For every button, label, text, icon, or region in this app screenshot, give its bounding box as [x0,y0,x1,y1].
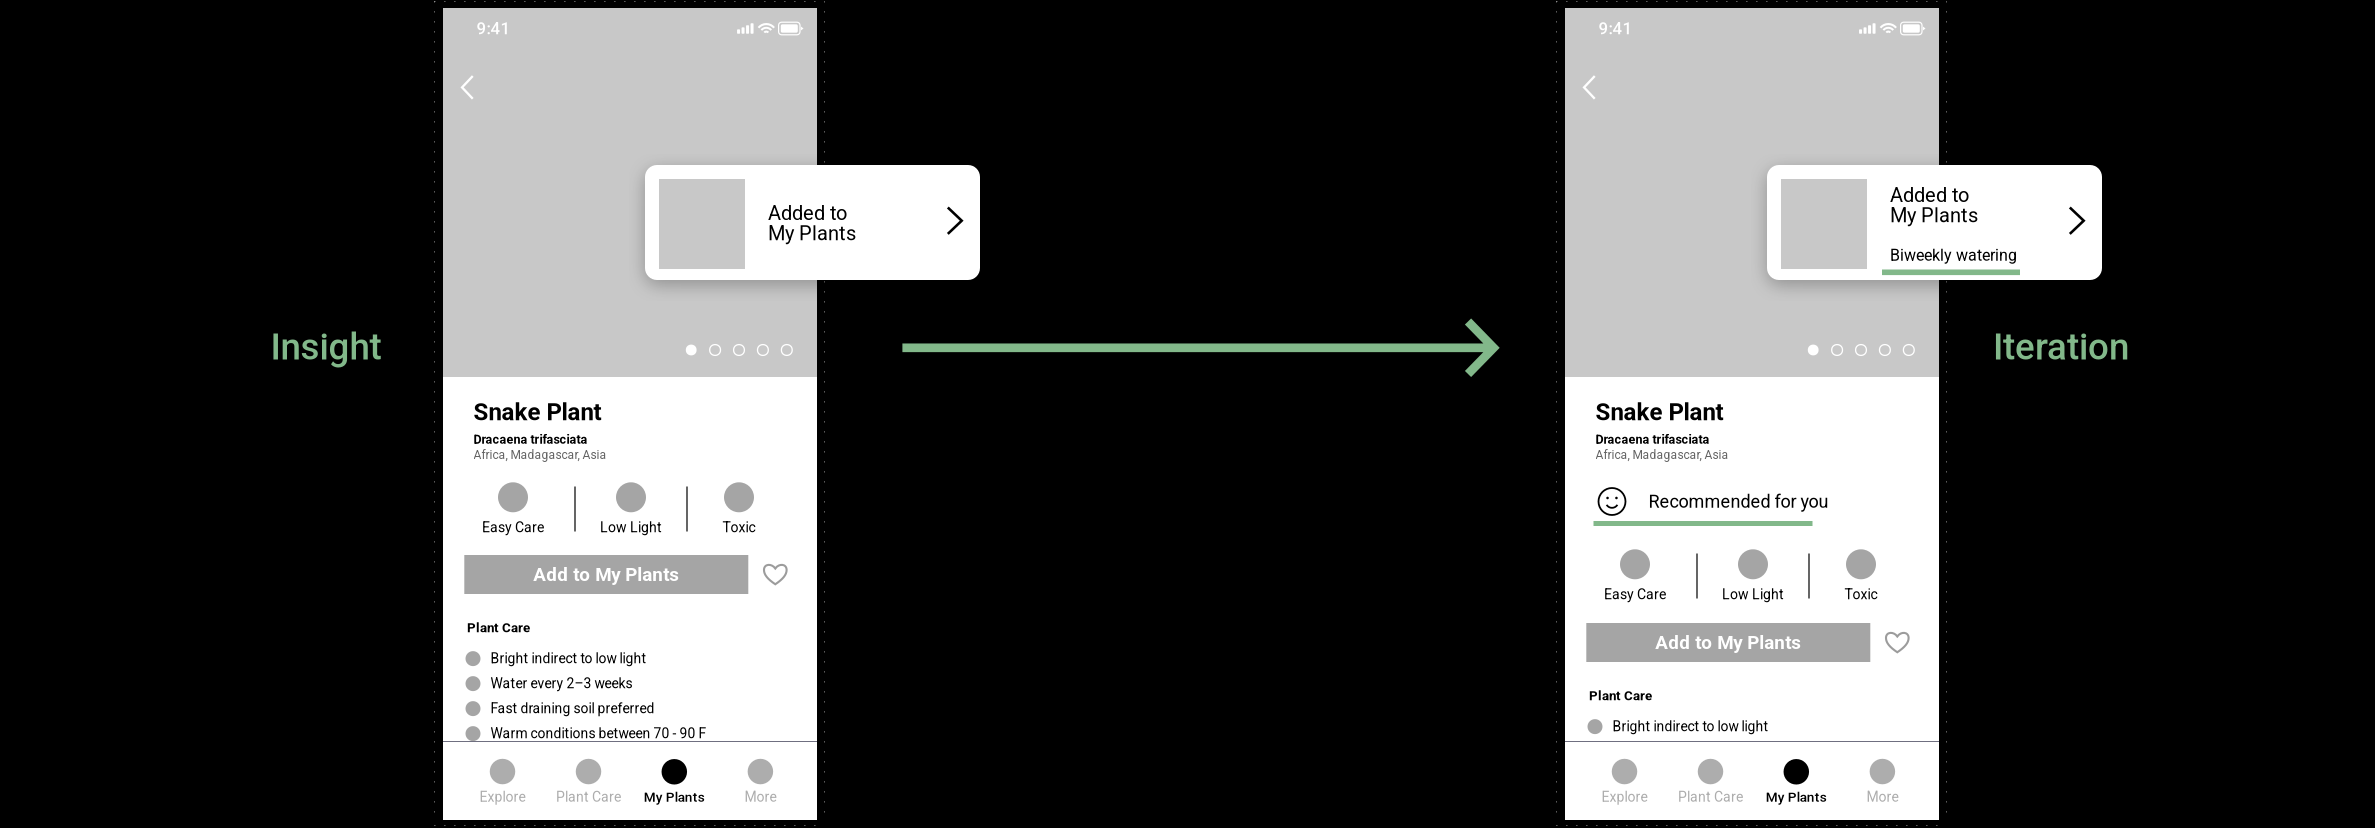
button[interactable]: Plant Care [1670,754,1751,810]
staticText: My Plants [1766,789,1827,805]
button[interactable]: Favorite [1879,624,1915,660]
staticText: Insight [270,325,381,368]
button[interactable]: Add to My Plants [1586,623,1870,662]
button[interactable]: Added to [645,165,980,280]
staticText: Low Light [600,519,662,536]
staticText: Toxic [1844,586,1877,603]
staticText: More [744,789,776,805]
staticText: Biweekly watering [1890,246,2017,265]
button[interactable]: My Plants [1758,754,1835,810]
staticText: Africa, Madagascar, Asia [1595,448,1728,462]
staticText: Fast draining soil preferred [490,700,654,717]
staticText: Water every 2–3 weeks [490,675,632,692]
staticText: Low Light [1722,586,1784,603]
staticText: My Plants [1890,204,1978,227]
button[interactable]: Back [1574,66,1605,109]
staticText: Add to My Plants [1655,631,1801,653]
staticText: Iteration [1993,325,2129,368]
button[interactable]: Favorite [757,556,793,592]
staticText: Plant Care [1678,789,1743,805]
button[interactable]: Explore [471,754,533,810]
staticText: 9:41 [476,19,510,38]
button[interactable]: More [1858,754,1906,810]
staticText: Plant Care [556,789,621,805]
staticText: Recommended for you [1648,491,1828,512]
staticText: Warm conditions between 70 - 90 F [490,725,706,742]
staticText: 9:41 [1598,19,1632,38]
staticText: Dracaena trifasciata [1595,432,1709,447]
staticText: Africa, Madagascar, Asia [473,448,606,462]
staticText: My Plants [768,222,856,245]
staticText: Bright indirect to low light [490,650,646,667]
button[interactable]: Explore [1593,754,1655,810]
staticText: Explore [479,789,525,805]
staticText: More [1866,789,1898,805]
staticText: Toxic [722,519,755,536]
staticText: Easy Care [482,519,544,536]
staticText: Plant Care [467,620,530,636]
button[interactable]: Back [452,66,483,109]
button[interactable]: More [736,754,784,810]
staticText: Explore [1601,789,1647,805]
button[interactable]: Add to My Plants [464,555,748,594]
button[interactable]: My Plants [636,754,713,810]
button[interactable]: Added to [1767,165,2102,280]
button[interactable]: Plant Care [548,754,629,810]
staticText: My Plants [644,789,705,805]
staticText: Dracaena trifasciata [473,432,587,447]
staticText: Add to My Plants [533,563,679,585]
staticText: Added to [1890,183,1969,207]
staticText: Added to [768,201,847,225]
staticText: Easy Care [1604,586,1666,603]
staticText: Plant Care [1589,688,1652,704]
staticText: Snake Plant [473,398,601,426]
staticText: Bright indirect to low light [1612,718,1768,735]
staticText: Snake Plant [1595,398,1723,426]
